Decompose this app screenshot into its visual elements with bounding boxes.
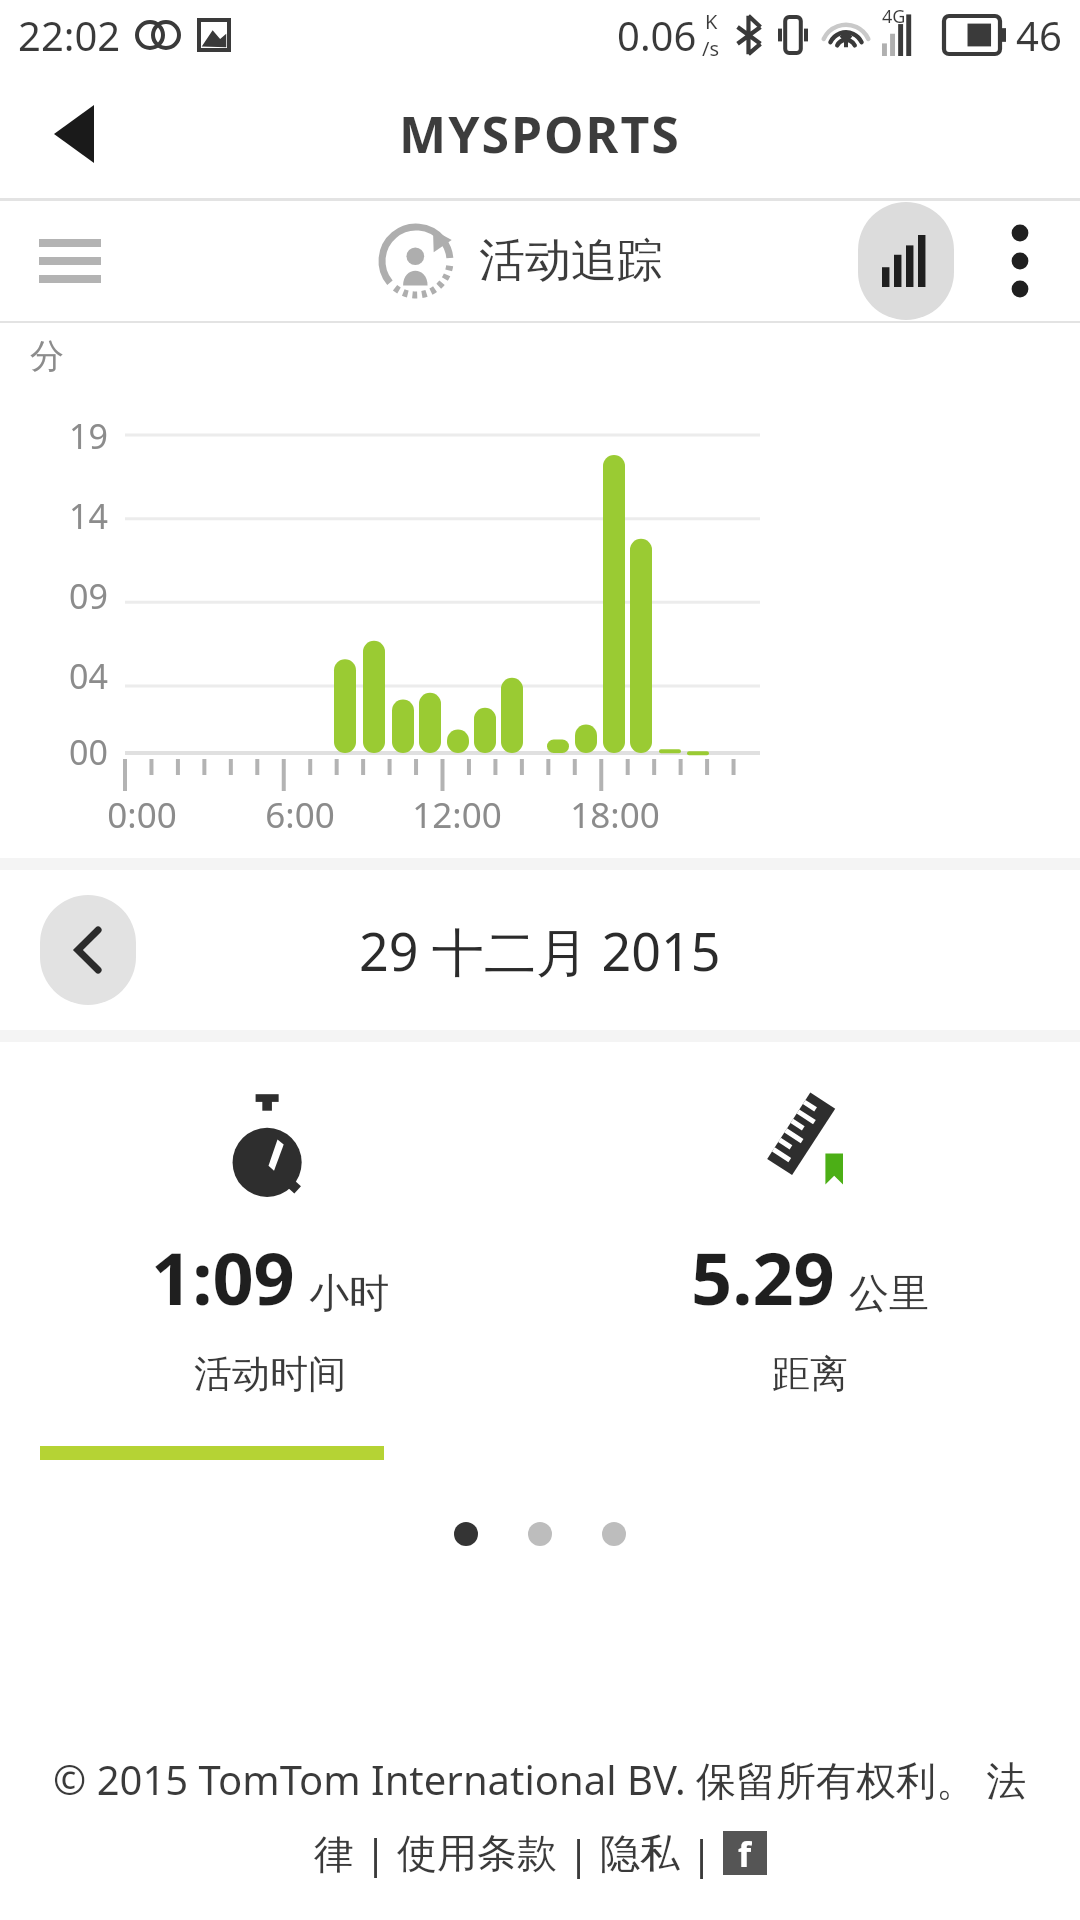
- staticText: 09: [40, 573, 108, 619]
- button[interactable]: Previous day: [40, 895, 136, 1005]
- staticText: 活动时间: [194, 1350, 346, 1398]
- button[interactable]: Page: [454, 1522, 478, 1546]
- staticText: 00: [40, 729, 108, 775]
- button[interactable]: 活动追踪: [377, 222, 663, 300]
- staticText: 小时: [309, 1268, 389, 1318]
- button[interactable]: More options: [978, 206, 1062, 316]
- staticText: 12:00: [399, 791, 515, 839]
- button[interactable]: Back: [24, 84, 124, 184]
- button[interactable]: Page: [528, 1522, 552, 1546]
- button[interactable]: 5.29: [540, 1092, 1080, 1398]
- staticText: |: [680, 1826, 723, 1880]
- button[interactable]: Page: [602, 1522, 626, 1546]
- staticText: 14: [40, 493, 108, 539]
- staticText: 46: [1016, 8, 1062, 62]
- staticText: 1:09: [151, 1228, 295, 1326]
- staticText: 22:02: [18, 8, 121, 62]
- staticText: 活动追踪: [479, 232, 663, 290]
- button[interactable]: 隐私: [600, 1828, 680, 1878]
- staticText: 分: [30, 335, 64, 378]
- staticText: K: [705, 8, 718, 35]
- staticText: 0.06: [617, 8, 697, 62]
- staticText: 04: [40, 653, 108, 699]
- staticText: 18:00: [557, 791, 673, 839]
- staticText: 19: [40, 413, 108, 459]
- button[interactable]: Statistics: [858, 202, 954, 320]
- button[interactable]: 1:09: [0, 1092, 540, 1398]
- staticText: f: [738, 1831, 752, 1875]
- staticText: |: [557, 1826, 600, 1880]
- staticText: 距离: [772, 1350, 848, 1398]
- button[interactable]: Menu: [20, 211, 120, 311]
- staticText: 5.29: [691, 1228, 835, 1326]
- staticText: /s: [702, 35, 720, 62]
- staticText: 0:00: [84, 791, 200, 839]
- staticText: 公里: [849, 1268, 929, 1318]
- button[interactable]: 使用条款: [397, 1828, 557, 1878]
- staticText: © 2015 TomTom International BV. 保留所有权利。 …: [53, 1752, 1027, 1807]
- staticText: 29 十二月 2015: [359, 915, 721, 986]
- button[interactable]: Facebook: [723, 1831, 767, 1875]
- staticText: 4G: [882, 4, 906, 29]
- staticText: MYSPORTS: [399, 100, 681, 168]
- staticText: 6:00: [242, 791, 358, 839]
- staticText: 律 |: [314, 1825, 397, 1880]
